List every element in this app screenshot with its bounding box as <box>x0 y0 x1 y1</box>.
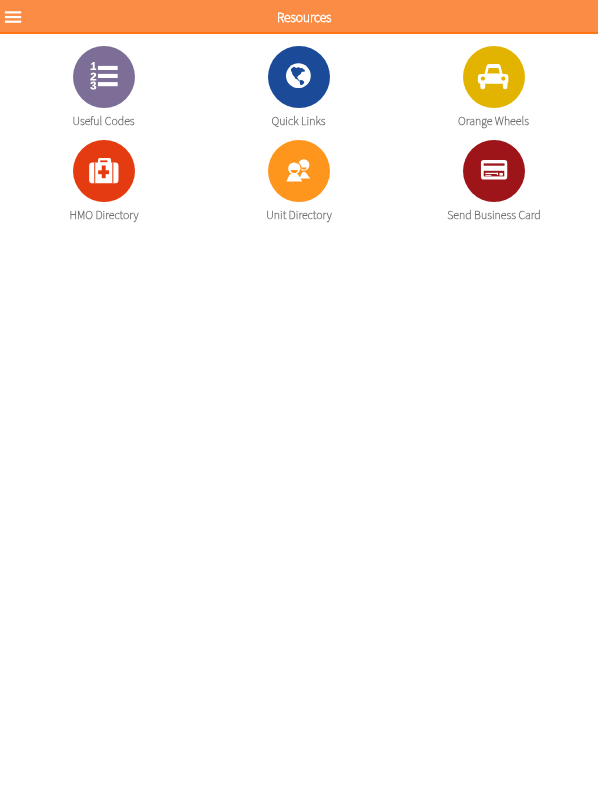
button[interactable]: Send Business Card <box>396 140 591 224</box>
button[interactable]: Quick Links <box>201 46 396 130</box>
button[interactable]: HMO Directory <box>6 140 201 224</box>
button[interactable]: Unit Directory <box>201 140 396 224</box>
button[interactable]: Open navigation menu <box>0 0 26 26</box>
staticText: Send Business Card <box>447 207 541 224</box>
button[interactable]: Useful Codes <box>6 46 201 130</box>
staticText: Resources <box>277 8 332 27</box>
staticText: Quick Links <box>271 113 326 130</box>
staticText: HMO Directory <box>69 207 139 224</box>
staticText: Unit Directory <box>266 207 332 224</box>
staticText: Useful Codes <box>72 113 135 130</box>
button[interactable]: Orange Wheels <box>396 46 591 130</box>
staticText: Orange Wheels <box>458 113 529 130</box>
